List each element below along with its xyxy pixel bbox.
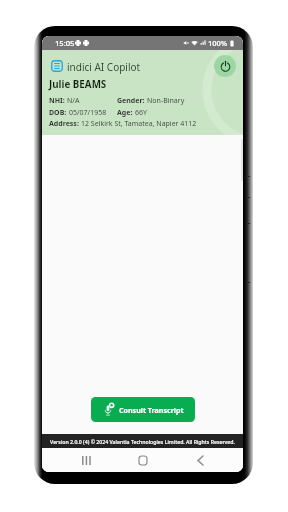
staticText: Julie BEAMS <box>49 78 107 91</box>
staticText: N/A <box>67 96 80 106</box>
staticText: 100% <box>208 38 228 48</box>
staticText: 12 Selkirk St, Tamatea, Napier 4112 <box>81 119 197 129</box>
staticText: 15:05 <box>55 38 75 48</box>
button[interactable]: Recents <box>72 448 100 472</box>
staticText: Gender: <box>117 96 147 106</box>
staticText: Non-Binary <box>147 96 185 106</box>
button[interactable]: Back <box>186 448 214 472</box>
button[interactable]: Power <box>214 55 236 77</box>
staticText: 66Y <box>135 108 147 118</box>
staticText: Version 2.0.0 (4) © 2024 Valentia Techno… <box>50 438 235 445</box>
staticText: Age: <box>117 108 135 118</box>
button[interactable]: Home <box>129 448 157 472</box>
staticText: indici AI Copilot <box>67 60 141 74</box>
staticText: NHI: <box>49 96 67 106</box>
staticText: Consult Transcript <box>119 405 184 415</box>
button[interactable]: Consult Transcript <box>91 397 195 422</box>
staticText: 05/07/1958 <box>69 108 107 118</box>
staticText: Address: <box>49 119 81 129</box>
staticText: DOB: <box>49 108 69 118</box>
